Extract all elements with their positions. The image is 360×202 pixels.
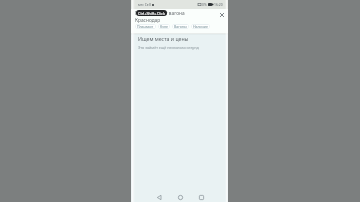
staticText: 16:20: [214, 2, 223, 7]
staticText: 0%: [202, 2, 207, 7]
button[interactable]: Москва — нет вагона: [131, 10, 211, 24]
staticText: мтс Cell: [138, 2, 151, 7]
button[interactable]: Наличие: [191, 24, 210, 29]
button[interactable]: Back: [154, 192, 164, 202]
staticText: Вагоны: [174, 24, 187, 29]
staticText: Краснодар: [135, 17, 161, 24]
staticText: Москва — нет вагона: [135, 10, 185, 17]
button[interactable]: Close: [217, 10, 226, 19]
staticText: Наличие: [193, 24, 208, 29]
button[interactable]: Плацкарт: [135, 24, 156, 29]
staticText: Ищем места и цены: [138, 35, 189, 42]
button[interactable]: Recents: [196, 192, 206, 202]
staticText: Купе: [160, 24, 168, 29]
staticText: Ctrl+Shift+Click: [138, 11, 165, 16]
button[interactable]: Купе: [158, 24, 170, 29]
staticText: Плацкарт: [137, 24, 154, 29]
button[interactable]: Home: [175, 192, 185, 202]
button[interactable]: Вагоны: [172, 24, 189, 29]
staticText: Это займёт ещё несколько секунд: [138, 45, 199, 50]
